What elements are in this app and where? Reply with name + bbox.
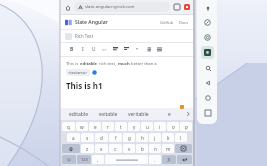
- button[interactable]: .: [149, 155, 161, 164]
- staticText: 文: [167, 157, 171, 162]
- staticText: u: [146, 124, 149, 130]
- button[interactable]: Numbered list: [143, 44, 154, 55]
- button[interactable]: Home: [63, 3, 72, 12]
- button[interactable]: q: [62, 122, 75, 131]
- button[interactable]: Screenshot: [201, 46, 214, 59]
- button[interactable]: veritable: [123, 108, 154, 120]
- button[interactable]: z: [81, 144, 94, 153]
- button[interactable]: Emoji: [62, 155, 76, 164]
- button[interactable]: B: [66, 44, 77, 55]
- button[interactable]: Tabs: [173, 3, 181, 11]
- staticText: y: [133, 124, 136, 130]
- button[interactable]: Document: [65, 33, 72, 40]
- button[interactable]: Search: [201, 61, 214, 74]
- button[interactable]: c: [109, 144, 122, 153]
- button[interactable]: i: [154, 122, 166, 131]
- button[interactable]: n: [149, 144, 161, 153]
- button[interactable]: Docs: [179, 20, 189, 25]
- staticText: x: [100, 146, 103, 152]
- button[interactable]: y: [128, 122, 140, 131]
- button[interactable]: r: [102, 122, 114, 131]
- button[interactable]: Record: [183, 3, 191, 11]
- button[interactable]: Bulleted list: [154, 44, 165, 55]
- button[interactable]: e: [89, 122, 101, 131]
- staticText: Slate Angular: [75, 19, 108, 26]
- staticText: rich text,: [98, 61, 118, 67]
- button[interactable]: l: [175, 133, 187, 142]
- staticText: b: [141, 146, 144, 152]
- staticText: This is h1: [66, 80, 103, 91]
- button[interactable]: evitable: [93, 108, 123, 120]
- button[interactable]: Mirror: [201, 31, 214, 44]
- button[interactable]: GitHub: [160, 20, 174, 25]
- staticText: i: [159, 124, 161, 130]
- button[interactable]: x: [95, 144, 108, 153]
- button[interactable]: Numbers: [77, 155, 91, 164]
- staticText: editable: [80, 61, 98, 67]
- button[interactable]: e: [154, 108, 185, 120]
- button[interactable]: Shift: [62, 144, 80, 153]
- button[interactable]: u: [141, 122, 153, 131]
- button[interactable]: t: [115, 122, 127, 131]
- button[interactable]: ,: [92, 155, 104, 164]
- button[interactable]: slate-angular.ngrock.com: [74, 2, 170, 12]
- staticText: h: [141, 135, 144, 141]
- staticText: f: [115, 135, 117, 141]
- staticText: editable: [69, 111, 88, 118]
- staticText: 123: [81, 157, 88, 162]
- staticText: d: [100, 135, 103, 141]
- staticText: much: [118, 61, 130, 67]
- button[interactable]: Code: [99, 44, 110, 55]
- staticText: I: [82, 46, 84, 53]
- staticText: evitable: [99, 111, 118, 118]
- button[interactable]: Language: [162, 155, 176, 164]
- button[interactable]: Recents: [201, 106, 214, 119]
- button[interactable]: Pin: [201, 1, 214, 14]
- button[interactable]: v: [123, 144, 135, 153]
- button[interactable]: Underline: [88, 44, 99, 55]
- staticText: ☺: [67, 157, 72, 162]
- staticText: <textarea>: [68, 70, 88, 75]
- staticText: U: [92, 46, 96, 53]
- button[interactable]: w: [76, 122, 88, 131]
- staticText: g: [128, 135, 131, 141]
- button[interactable]: g: [123, 133, 135, 142]
- button[interactable]: d: [95, 133, 108, 142]
- button[interactable]: Heading two: [121, 44, 132, 55]
- button[interactable]: p: [180, 122, 192, 131]
- button[interactable]: More suggestions: [185, 108, 191, 120]
- button[interactable]: Italic: [77, 44, 88, 55]
- button[interactable]: Heading one: [110, 44, 121, 55]
- staticText: ,: [97, 157, 99, 163]
- button[interactable]: m: [162, 144, 174, 153]
- button[interactable]: Home: [201, 91, 214, 104]
- staticText: <>: [102, 47, 107, 52]
- staticText: This is: [66, 61, 80, 67]
- staticText: q: [67, 124, 70, 130]
- button[interactable]: Space: [105, 155, 148, 164]
- button[interactable]: k: [162, 133, 174, 142]
- button[interactable]: Back: [201, 76, 214, 89]
- button[interactable]: editable: [63, 108, 93, 120]
- button[interactable]: a: [67, 133, 80, 142]
- staticText: slate-angular.ngrock.com: [85, 4, 135, 10]
- staticText: e: [94, 124, 97, 130]
- staticText: p: [185, 124, 188, 130]
- button[interactable]: Backspace: [175, 144, 192, 153]
- button[interactable]: b: [136, 144, 148, 153]
- button[interactable]: Rotate: [201, 16, 214, 29]
- button[interactable]: f: [109, 133, 122, 142]
- staticText: e: [168, 111, 171, 118]
- button[interactable]: j: [149, 133, 161, 142]
- button[interactable]: Enter: [177, 155, 192, 164]
- button[interactable]: h: [136, 133, 148, 142]
- staticText: n: [154, 146, 157, 152]
- button[interactable]: Quote: [132, 44, 143, 55]
- staticText: o: [172, 124, 175, 130]
- staticText: Rich Text: [75, 33, 94, 39]
- button[interactable]: o: [167, 122, 179, 131]
- staticText: j: [154, 135, 156, 141]
- staticText: “: [136, 46, 139, 54]
- staticText: m: [166, 146, 171, 152]
- button[interactable]: s: [81, 133, 94, 142]
